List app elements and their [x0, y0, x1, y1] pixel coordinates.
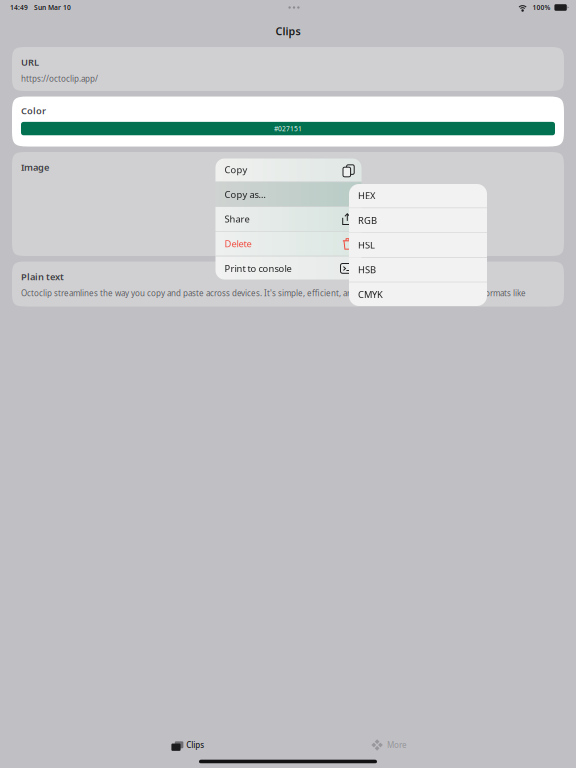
staticText: Print to console [224, 262, 291, 275]
button[interactable]: HSL [349, 233, 487, 257]
staticText: Copy as… [224, 188, 265, 200]
button[interactable]: Plain text [12, 261, 564, 306]
button[interactable]: HSB [349, 258, 487, 282]
staticText: Sun Mar 10 [28, 3, 71, 12]
button[interactable]: Delete [215, 232, 361, 256]
staticText: 14:49 [10, 3, 28, 12]
button[interactable]: URL [12, 47, 564, 91]
button[interactable]: Print to console [215, 256, 361, 280]
button[interactable]: Image [12, 152, 564, 256]
staticText: CMYK [358, 288, 383, 301]
staticText: #027151 [274, 124, 302, 133]
staticText: Share [224, 213, 249, 225]
staticText: RGB [358, 214, 377, 226]
button[interactable]: Copy [215, 157, 361, 182]
staticText: Clips [275, 24, 300, 38]
button[interactable]: Copy as… [215, 182, 361, 206]
staticText: https://octoclip.app/ [21, 73, 98, 84]
button[interactable]: Share [215, 207, 361, 231]
staticText: Clips [186, 740, 204, 750]
button[interactable]: CMYK [349, 282, 487, 306]
button[interactable]: RGB [349, 208, 487, 232]
button[interactable]: Clips [164, 736, 210, 754]
staticText: More [387, 740, 407, 750]
staticText: Plain text [21, 270, 64, 283]
staticText: Color [21, 104, 46, 117]
staticText: 100% [528, 3, 554, 12]
staticText: HSL [358, 239, 375, 251]
staticText: Copy [224, 163, 247, 176]
button[interactable]: More [366, 736, 413, 754]
staticText: HSB [358, 263, 376, 276]
staticText: Image [21, 161, 49, 173]
button[interactable]: Color [12, 96, 564, 146]
staticText: Octoclip streamlines the way you copy an… [21, 288, 526, 298]
staticText: HEX [358, 189, 375, 202]
button[interactable]: HEX [349, 183, 487, 208]
staticText: Delete [224, 237, 251, 250]
staticText: URL [21, 56, 39, 68]
